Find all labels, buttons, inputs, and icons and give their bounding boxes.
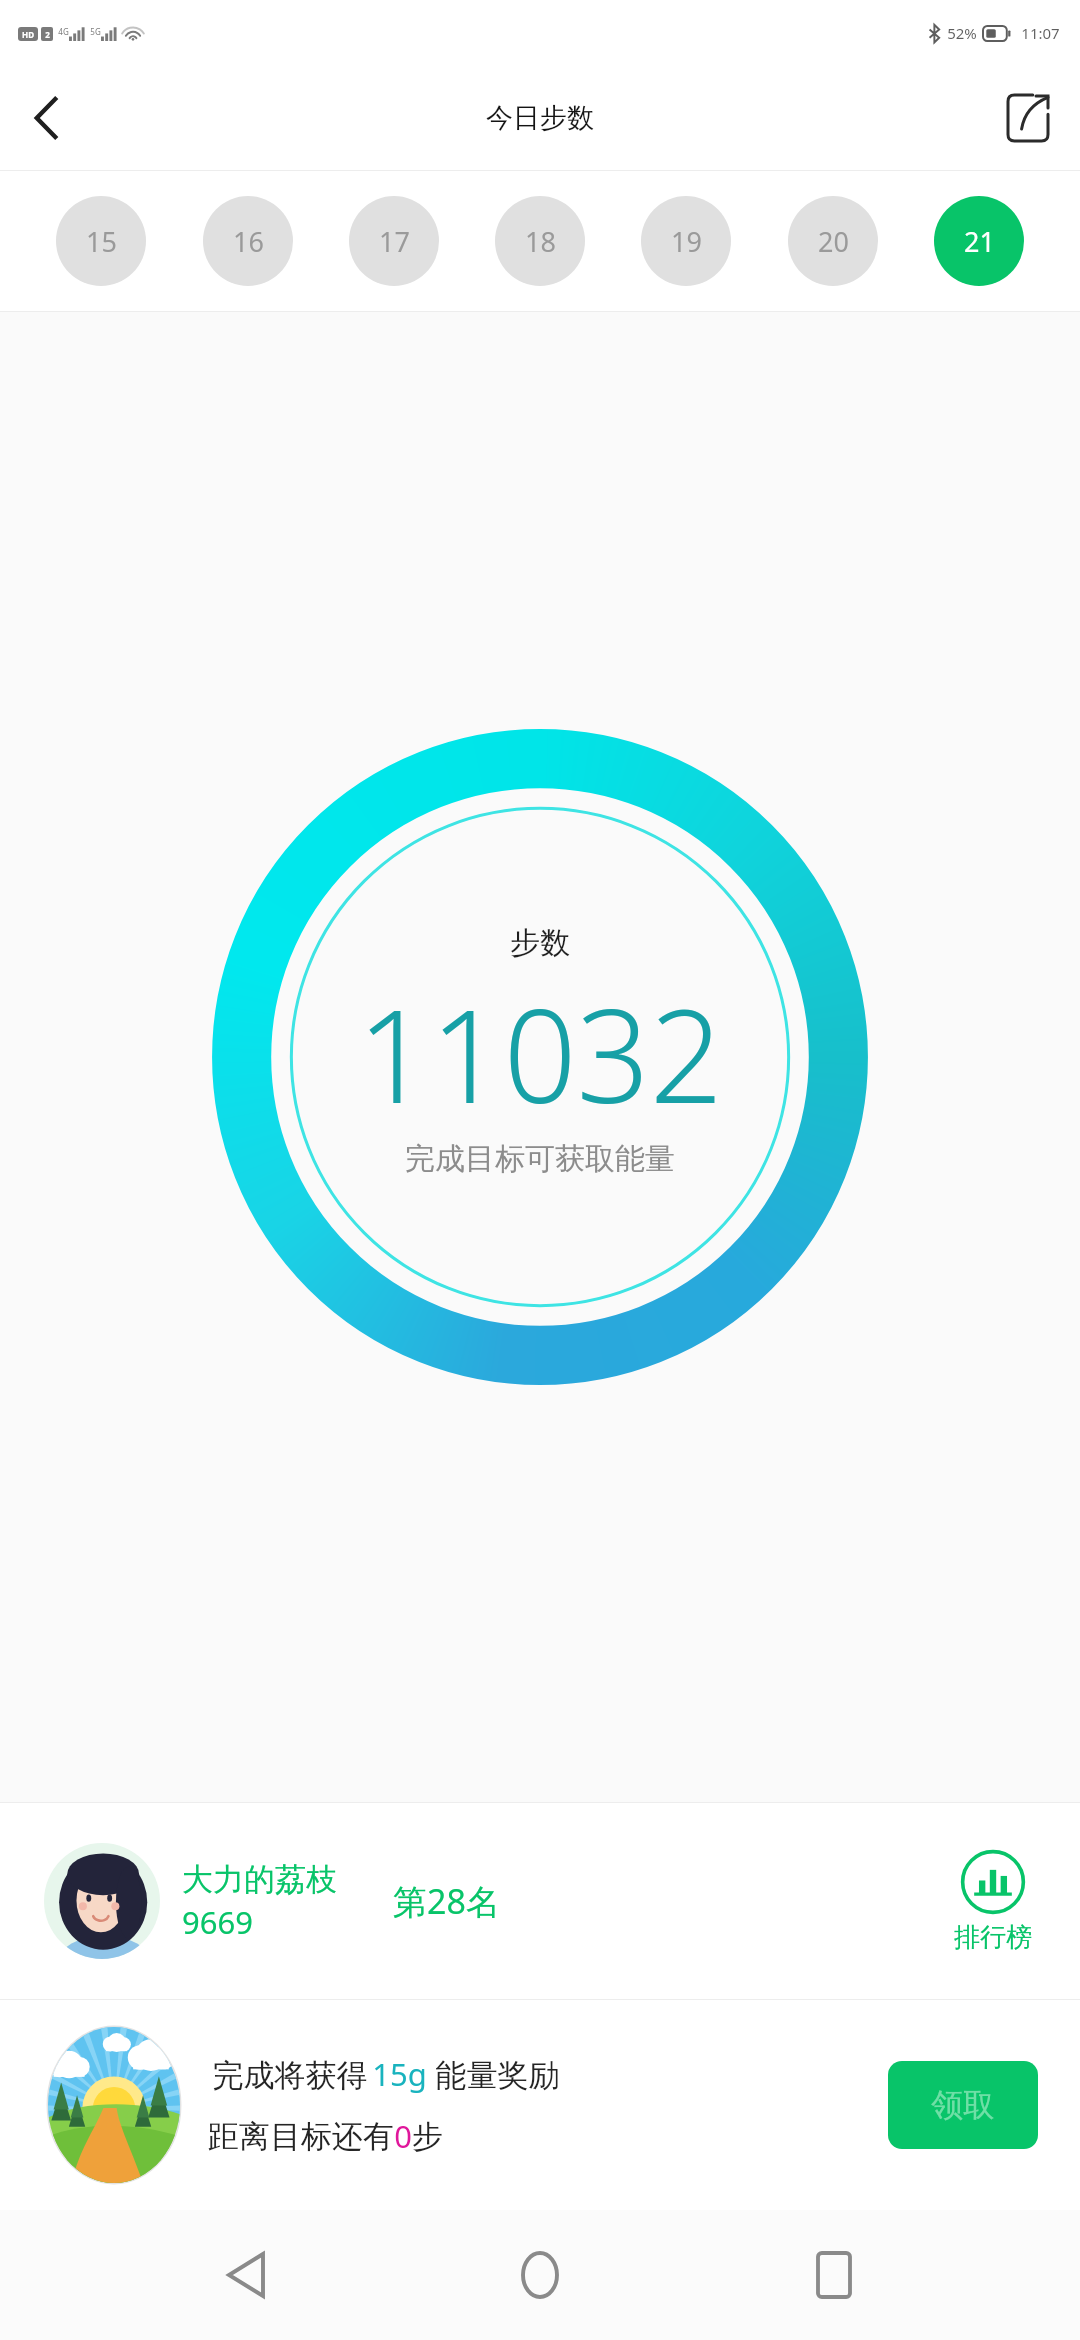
staticText: 19	[671, 223, 702, 260]
staticText: 步	[412, 2117, 443, 2156]
button[interactable]: 17	[349, 196, 439, 286]
staticText: 今日步数	[486, 101, 594, 135]
staticText: 52%	[947, 23, 977, 43]
staticText: 第28名	[393, 1878, 500, 1924]
button[interactable]: 领取	[888, 2061, 1038, 2149]
staticText: 20	[818, 223, 849, 260]
staticText: 11:07	[1021, 23, 1060, 43]
button[interactable]: Back	[198, 2227, 294, 2323]
staticText: 领取	[931, 2085, 995, 2125]
staticText: 15g	[372, 2053, 427, 2095]
button[interactable]: Back	[8, 80, 84, 156]
staticText: 21	[964, 223, 995, 260]
button[interactable]: 19	[641, 196, 731, 286]
staticText: 5G	[90, 26, 101, 37]
staticText: 排行榜	[954, 1921, 1032, 1954]
button[interactable]: 15	[56, 196, 146, 286]
staticText: 9669	[182, 1901, 253, 1943]
staticText: 大力的荔枝	[182, 1860, 337, 1899]
button[interactable]: Home	[492, 2227, 588, 2323]
staticText: 18	[525, 223, 556, 260]
staticText: 距离目标还有	[208, 2117, 394, 2156]
staticText: 11032	[357, 966, 723, 1140]
staticText: 完成将获得	[208, 2053, 372, 2095]
button[interactable]: 大力的荔枝	[0, 1803, 1080, 1999]
staticText: 完成目标可获取能量	[405, 1140, 675, 1178]
button[interactable]: 20	[788, 196, 878, 286]
button[interactable]: 16	[203, 196, 293, 286]
staticText: 步数	[510, 924, 570, 962]
staticText: 0	[394, 2115, 412, 2157]
button[interactable]: Recent apps	[786, 2227, 882, 2323]
button[interactable]: 排行榜	[954, 1849, 1032, 1954]
staticText: 能量奖励	[427, 2053, 560, 2095]
button[interactable]: 21	[934, 196, 1024, 286]
button[interactable]: 18	[495, 196, 585, 286]
staticText: 15	[86, 223, 117, 260]
staticText: 16	[233, 223, 264, 260]
staticText: 17	[379, 223, 410, 260]
button[interactable]: Share	[990, 80, 1066, 156]
staticText: 4G	[58, 26, 69, 37]
staticText: HD	[22, 29, 34, 40]
staticText: 2	[45, 29, 50, 40]
